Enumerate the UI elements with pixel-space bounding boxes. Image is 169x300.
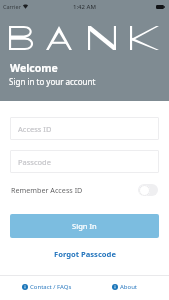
button[interactable]: Forgot Passcode <box>50 247 120 261</box>
staticText: Passcode <box>18 157 51 167</box>
staticText: Welcome <box>10 61 58 75</box>
other: Battery <box>156 5 165 9</box>
staticText: Remember Access ID <box>11 185 83 195</box>
staticText: Forgot Passcode <box>54 249 116 259</box>
staticText: Sign in to your account <box>9 76 96 87</box>
staticText: Access ID <box>18 124 52 134</box>
staticText: Sign In <box>72 221 97 231</box>
other: Wifi <box>23 4 28 9</box>
other: BANK <box>0 26 169 50</box>
button[interactable]: Access ID <box>10 117 159 140</box>
staticText: 1:42 AM <box>73 3 96 11</box>
staticText: About <box>120 283 138 291</box>
button[interactable]: Sign In <box>10 214 159 238</box>
button[interactable]: About <box>82 275 167 299</box>
staticText: Contact / FAQs <box>30 283 72 291</box>
button[interactable]: Remember Access ID <box>11 181 158 199</box>
button[interactable]: Contact / FAQs <box>5 275 89 299</box>
button[interactable]: Passcode <box>10 150 159 173</box>
staticText: Carrier <box>3 3 21 10</box>
